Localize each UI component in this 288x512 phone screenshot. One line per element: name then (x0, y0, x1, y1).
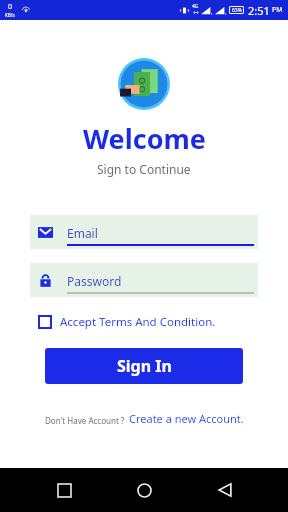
other: Email (38, 225, 53, 240)
staticText: Email (67, 225, 98, 241)
staticText: Create a new Account. (129, 411, 244, 426)
button[interactable]: Password (30, 263, 258, 297)
button[interactable]: Create a new Account. (129, 411, 244, 426)
staticText: Welcome (83, 120, 206, 157)
staticText: Don't Have Account ? (45, 415, 125, 426)
staticText: 0 (8, 2, 13, 12)
staticText: Sign to Continue (97, 161, 191, 177)
staticText: Password (67, 273, 122, 289)
button[interactable]: Home (127, 473, 161, 507)
staticText: ++ (193, 10, 199, 17)
staticText: 63% (232, 7, 242, 14)
staticText: PM (272, 5, 283, 15)
button[interactable]: Sign In (45, 348, 243, 384)
other: Password (38, 273, 53, 288)
staticText: 4G (192, 3, 199, 10)
button[interactable]: Back (208, 473, 242, 507)
staticText: KB/s (5, 12, 15, 18)
staticText: Accept Terms And Condition. (60, 314, 216, 330)
button[interactable]: Recent apps (47, 473, 81, 507)
button[interactable]: Email (30, 215, 258, 249)
button[interactable]: Accept Terms And Condition. (38, 311, 258, 333)
staticText: Sign In (117, 355, 172, 377)
staticText: 2:51 (248, 3, 270, 18)
